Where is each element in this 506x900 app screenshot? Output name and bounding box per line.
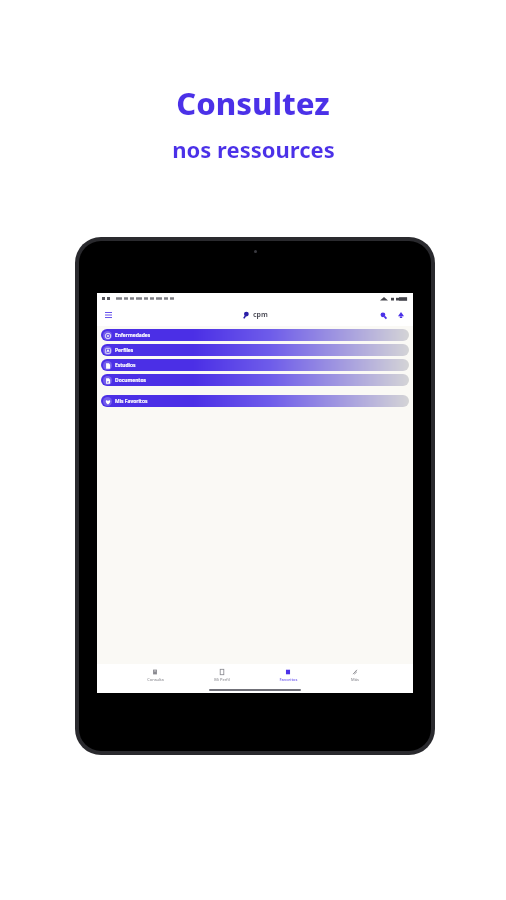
button[interactable]: Menu bbox=[102, 309, 114, 321]
staticText: Favoritos bbox=[279, 677, 298, 682]
button[interactable]: Mis Favoritos bbox=[101, 395, 409, 407]
button[interactable]: Perfiles bbox=[101, 344, 409, 356]
staticText: Consultez bbox=[176, 82, 330, 124]
button[interactable]: Consulta bbox=[133, 664, 177, 686]
staticText: cpm bbox=[253, 310, 268, 320]
staticText: Documentos bbox=[115, 377, 146, 384]
button[interactable]: Notifications bbox=[395, 309, 407, 321]
staticText: Consulta bbox=[147, 677, 164, 682]
staticText: Enfermedades bbox=[115, 332, 151, 339]
staticText: Mis Favoritos bbox=[115, 398, 148, 405]
button[interactable]: Search bbox=[377, 309, 389, 321]
button[interactable]: Estudios bbox=[101, 359, 409, 371]
button[interactable]: Más bbox=[333, 664, 377, 686]
staticText: Más bbox=[351, 677, 359, 682]
staticText: Mi Perfil bbox=[214, 677, 230, 682]
staticText: Estudios bbox=[115, 362, 136, 369]
button[interactable]: Documentos bbox=[101, 374, 409, 386]
staticText: nos ressources bbox=[172, 134, 335, 164]
button[interactable]: Enfermedades bbox=[101, 329, 409, 341]
button[interactable]: Favoritos bbox=[266, 664, 310, 686]
staticText: Perfiles bbox=[115, 347, 134, 354]
button[interactable]: Mi Perfil bbox=[200, 664, 244, 686]
